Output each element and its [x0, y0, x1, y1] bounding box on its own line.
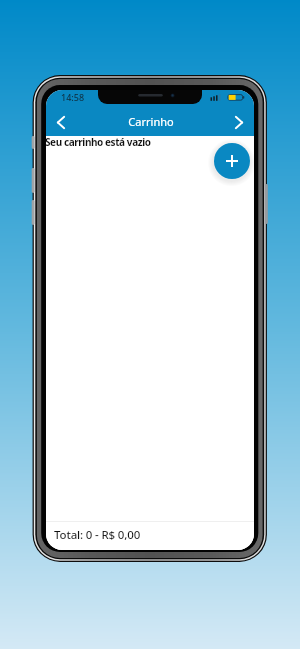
- button[interactable]: Back: [46, 109, 76, 136]
- staticText: Carrinho: [128, 114, 174, 129]
- staticText: 14:58: [61, 91, 85, 103]
- button[interactable]: Add item: [214, 143, 250, 179]
- staticText: Seu carrinho está vazio: [46, 135, 151, 149]
- button[interactable]: Forward: [224, 109, 254, 136]
- staticText: Total: 0 - R$ 0,00: [54, 527, 141, 543]
